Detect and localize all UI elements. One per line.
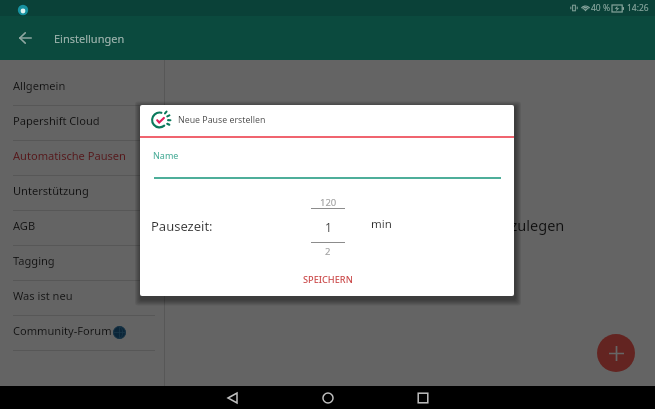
button[interactable]: Home	[280, 386, 375, 409]
button[interactable]: Papershift Cloud	[0, 106, 164, 141]
staticText: min	[371, 216, 392, 232]
button[interactable]: Community-Forum	[0, 316, 164, 351]
staticText: 40 %	[591, 2, 610, 14]
staticText: Tippe auf + um eine neue Pause anzulegen	[272, 215, 565, 235]
staticText: Automatische Pausen	[13, 148, 126, 163]
button[interactable]: Back	[12, 25, 38, 51]
button[interactable]: SPEICHERN	[295, 269, 361, 290]
button[interactable]: Allgemein	[0, 71, 164, 106]
staticText: Unterstützung	[13, 183, 89, 198]
staticText: 1	[325, 219, 332, 235]
staticText: Pausezeit:	[151, 217, 213, 235]
button[interactable]: Unterstützung	[0, 176, 164, 211]
button[interactable]: Tagging	[0, 246, 164, 281]
staticText: 14:26	[627, 2, 649, 14]
staticText: Einstellungen	[54, 31, 125, 46]
staticText: Allgemein	[13, 78, 66, 93]
staticText: SPEICHERN	[303, 273, 353, 286]
button[interactable]: Automatische Pausen	[0, 141, 164, 176]
button[interactable]: Was ist neu	[0, 281, 164, 316]
staticText: 120	[320, 196, 337, 209]
button[interactable]: 120	[308, 194, 348, 210]
staticText: 2	[325, 245, 331, 258]
staticText: Papershift Cloud	[13, 113, 100, 128]
staticText: Name	[153, 149, 179, 161]
staticText: AGB	[13, 218, 36, 233]
button[interactable]: AGB	[0, 211, 164, 246]
staticText: Tagging	[13, 253, 55, 268]
staticText: Neue Pause erstellen	[178, 114, 266, 126]
button[interactable]: Back	[185, 386, 280, 409]
button[interactable]: Recent apps	[375, 386, 470, 409]
staticText: Was ist neu	[13, 288, 73, 303]
staticText: Community-Forum	[13, 323, 112, 338]
button[interactable]: Add	[597, 334, 635, 372]
button[interactable]: 2	[308, 243, 348, 259]
